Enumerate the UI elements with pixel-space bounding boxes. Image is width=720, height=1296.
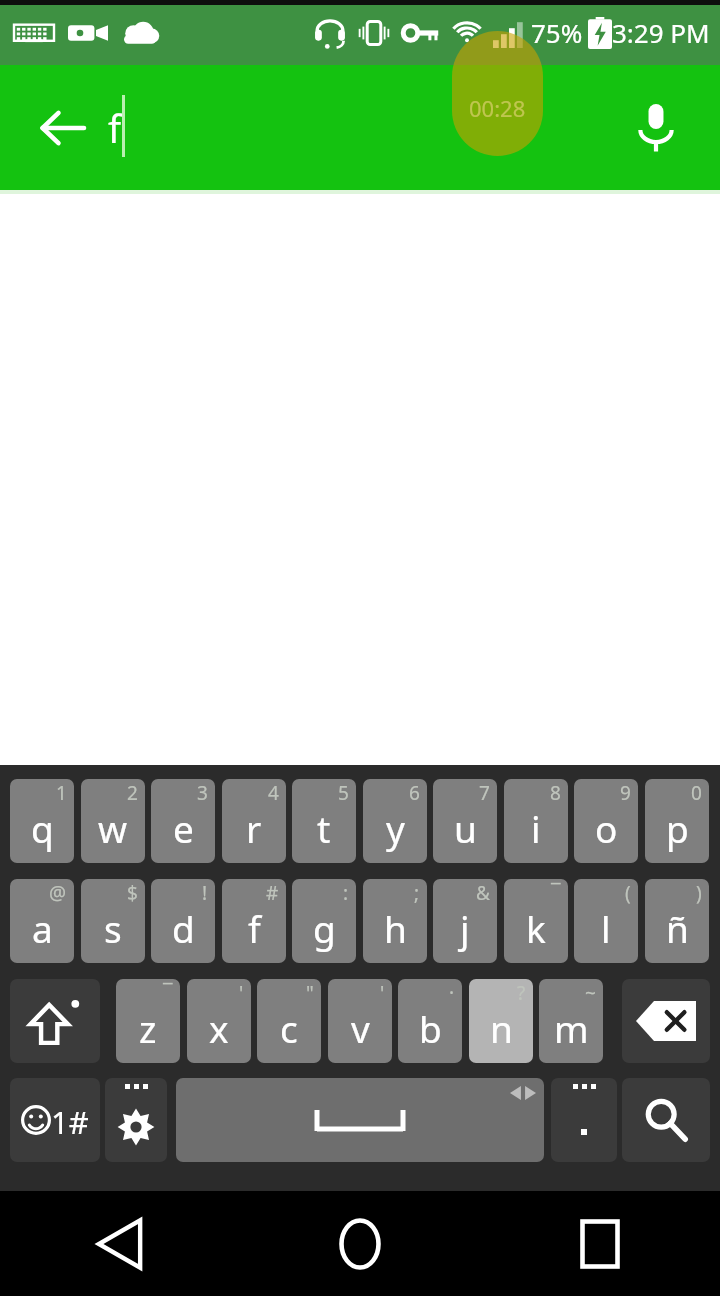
staticText: ' xyxy=(380,980,385,1006)
staticText: c xyxy=(280,1003,298,1053)
button[interactable]: 8 xyxy=(504,779,568,863)
button[interactable]: " xyxy=(257,979,321,1063)
staticText: : xyxy=(343,880,349,906)
staticText: 7 xyxy=(479,780,490,806)
staticText: p xyxy=(666,803,689,853)
staticText: 9 xyxy=(620,780,631,806)
staticText: ñ xyxy=(666,903,689,953)
button[interactable]: ¯ xyxy=(504,879,568,963)
staticText: i xyxy=(531,803,541,853)
button[interactable]: 0 xyxy=(645,779,709,863)
staticText: ) xyxy=(696,880,702,906)
staticText: ¯ xyxy=(551,880,561,906)
staticText: 0 xyxy=(691,780,702,806)
staticText: m xyxy=(554,1003,589,1053)
staticText: $ xyxy=(127,880,138,906)
button[interactable]: ( xyxy=(574,879,638,963)
staticText: b xyxy=(419,1003,442,1053)
staticText: x xyxy=(209,1003,229,1053)
staticText: f xyxy=(108,102,122,154)
staticText: 3:29 PM xyxy=(612,15,710,50)
button[interactable]: 7 xyxy=(433,779,497,863)
button[interactable]: 3 xyxy=(151,779,215,863)
button[interactable]: 5 xyxy=(292,779,356,863)
button[interactable]: ' xyxy=(328,979,392,1063)
staticText: h xyxy=(384,903,407,953)
button[interactable]: 00:28 xyxy=(452,31,543,156)
button[interactable] xyxy=(551,1078,617,1162)
staticText: 6 xyxy=(409,780,420,806)
button[interactable]: f xyxy=(108,88,528,168)
staticText: k xyxy=(526,903,546,953)
button[interactable]: 1 xyxy=(10,779,74,863)
staticText: 2 xyxy=(127,780,138,806)
button[interactable]: · xyxy=(398,979,462,1063)
staticText: f xyxy=(248,903,261,953)
staticText: j xyxy=(460,903,470,953)
staticText: ' xyxy=(239,980,244,1006)
button[interactable]: ? xyxy=(469,979,533,1063)
staticText: 75% xyxy=(531,15,583,50)
button[interactable]: Space xyxy=(176,1078,544,1162)
staticText: ? xyxy=(517,980,526,1006)
staticText: y xyxy=(386,803,405,853)
staticText: r xyxy=(246,803,262,853)
button[interactable]: 9 xyxy=(574,779,638,863)
button[interactable]: Back xyxy=(24,90,100,166)
staticText: ¯ xyxy=(163,980,173,1006)
staticText: w xyxy=(98,803,128,853)
button[interactable]: 2 xyxy=(81,779,145,863)
button[interactable]: ) xyxy=(645,879,709,963)
button[interactable]: # xyxy=(222,879,286,963)
button[interactable]: ~ xyxy=(539,979,603,1063)
staticText: & xyxy=(476,880,490,906)
button[interactable]: ! xyxy=(151,879,215,963)
button[interactable]: & xyxy=(433,879,497,963)
staticText: 00:28 xyxy=(469,93,526,123)
button[interactable]: Shift xyxy=(10,979,100,1063)
staticText: 1# xyxy=(51,1101,89,1143)
staticText: 3 xyxy=(197,780,208,806)
button[interactable]: $ xyxy=(81,879,145,963)
button[interactable]: Voice search xyxy=(618,90,694,166)
staticText: # xyxy=(266,880,279,906)
button[interactable]: ; xyxy=(363,879,427,963)
staticText: g xyxy=(313,903,336,953)
staticText: q xyxy=(31,803,54,853)
staticText: z xyxy=(139,1003,157,1053)
button[interactable]: 4 xyxy=(222,779,286,863)
staticText: @ xyxy=(49,880,67,906)
staticText: ~ xyxy=(585,980,596,1006)
button[interactable]: Settings xyxy=(105,1078,167,1162)
button[interactable]: Back xyxy=(0,1191,240,1296)
button[interactable]: 6 xyxy=(363,779,427,863)
staticText: 1 xyxy=(56,780,67,806)
staticText: ; xyxy=(414,880,420,906)
button[interactable]: @ xyxy=(10,879,74,963)
button[interactable]: Home xyxy=(240,1191,480,1296)
staticText: s xyxy=(104,903,122,953)
staticText: u xyxy=(454,803,477,853)
staticText: t xyxy=(317,803,331,853)
button[interactable]: Recent apps xyxy=(480,1191,720,1296)
staticText: d xyxy=(172,903,195,953)
button[interactable]: ¯ xyxy=(116,979,180,1063)
staticText: v xyxy=(351,1003,370,1053)
button[interactable]: Symbols and emoji xyxy=(10,1078,100,1162)
staticText: ! xyxy=(202,880,208,906)
staticText: 5 xyxy=(338,780,349,806)
staticText: e xyxy=(173,803,194,853)
staticText: · xyxy=(449,980,455,1006)
staticText: a xyxy=(32,903,53,953)
button[interactable]: : xyxy=(292,879,356,963)
staticText: 8 xyxy=(550,780,561,806)
staticText: l xyxy=(601,903,611,953)
button[interactable]: Backspace xyxy=(622,979,710,1063)
staticText: " xyxy=(306,980,314,1006)
staticText: 4 xyxy=(268,780,279,806)
button[interactable]: ' xyxy=(187,979,251,1063)
staticText: o xyxy=(595,803,618,853)
staticText: n xyxy=(490,1003,513,1053)
staticText: ( xyxy=(625,880,631,906)
button[interactable]: Search xyxy=(622,1078,710,1162)
